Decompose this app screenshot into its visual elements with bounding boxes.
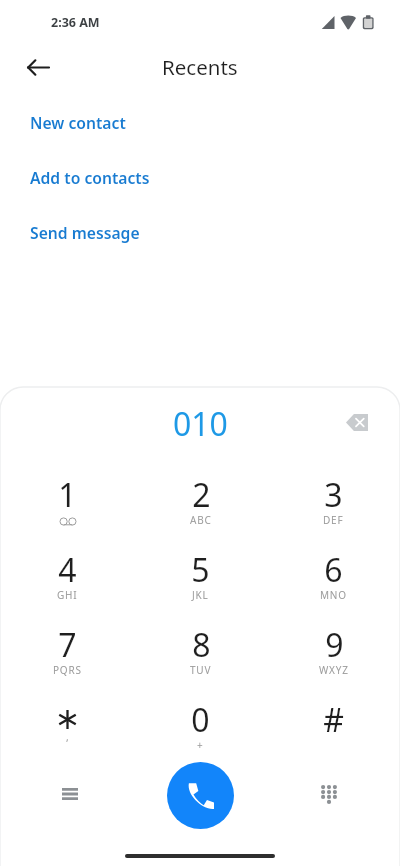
staticText: # [323, 698, 344, 742]
staticText: 4 [58, 548, 77, 592]
staticText: 010 [173, 402, 228, 446]
staticText: MNO [320, 588, 347, 602]
staticText: Add to contacts [30, 167, 150, 188]
staticText: 1 [58, 473, 77, 517]
staticText: 0 [191, 698, 210, 742]
staticText: 5 [191, 548, 210, 592]
staticText: , [66, 730, 69, 744]
button[interactable]: 1 [0, 473, 134, 548]
button[interactable]: 2 [134, 473, 267, 548]
staticText: JKL [192, 588, 209, 602]
button[interactable]: Call [167, 762, 234, 829]
staticText: WXYZ [319, 663, 349, 677]
button[interactable]: 3 [267, 473, 400, 548]
button[interactable]: , [0, 698, 134, 773]
button[interactable]: 6 [267, 548, 400, 623]
button[interactable]: # [267, 698, 400, 773]
staticText: 2 [192, 473, 211, 517]
button[interactable]: Add to contacts [0, 155, 400, 210]
button[interactable]: 5 [134, 548, 267, 623]
button[interactable]: More options [46, 770, 94, 818]
staticText: 6 [324, 548, 343, 592]
staticText: 3 [324, 473, 343, 517]
staticText: 8 [192, 623, 211, 667]
staticText: PQRS [53, 663, 82, 677]
button[interactable]: 7 [0, 623, 134, 698]
button[interactable]: Dialpad [305, 770, 353, 818]
staticText: New contact [30, 112, 126, 133]
button[interactable]: 4 [0, 548, 134, 623]
staticText: + [197, 738, 204, 752]
button[interactable]: New contact [0, 100, 400, 155]
button[interactable]: 0 [134, 698, 267, 773]
button[interactable]: Backspace [336, 401, 378, 443]
staticText: GHI [57, 588, 78, 602]
staticText: TUV [190, 663, 212, 677]
button[interactable]: Back [14, 43, 62, 91]
button[interactable]: 8 [134, 623, 267, 698]
button[interactable]: 9 [267, 623, 400, 698]
staticText: DEF [323, 513, 344, 527]
staticText: 2:36 AM [51, 14, 100, 31]
staticText: Send message [30, 222, 140, 243]
staticText: 9 [325, 623, 344, 667]
staticText: 7 [58, 623, 77, 667]
button[interactable]: Send message [0, 210, 400, 265]
staticText: Recents [162, 53, 238, 81]
staticText: ABC [190, 513, 212, 527]
